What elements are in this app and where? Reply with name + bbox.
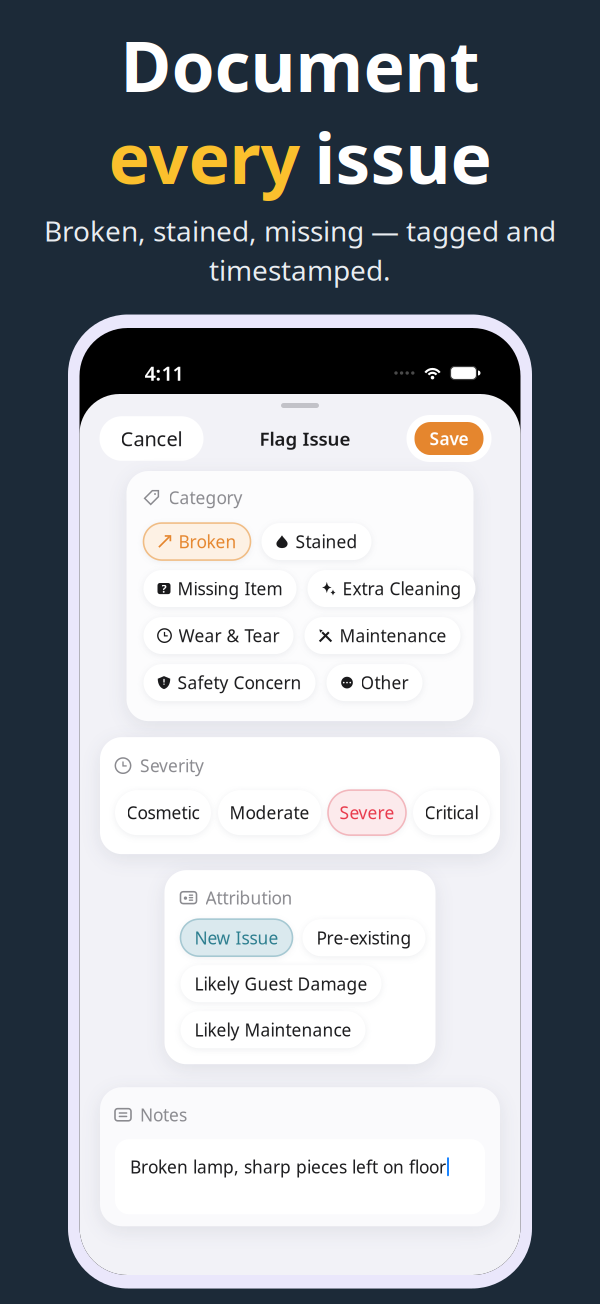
staticText: timestamped. <box>209 251 391 288</box>
button[interactable]: Wear & Tear <box>143 617 293 654</box>
button[interactable]: Extra Cleaning <box>307 570 475 607</box>
staticText: Broken, stained, missing — tagged and <box>44 212 556 249</box>
button[interactable]: Other <box>326 664 422 701</box>
staticText: every <box>108 111 300 203</box>
staticText: Cancel <box>120 425 182 452</box>
staticText: Pre-existing <box>316 926 411 949</box>
staticText: Critical <box>424 801 478 824</box>
button[interactable]: New Issue <box>180 919 292 956</box>
button[interactable]: Likely Guest Damage <box>180 965 381 1002</box>
staticText: ? <box>161 581 166 596</box>
button[interactable]: Pre-existing <box>302 919 425 956</box>
staticText: Severe <box>339 801 394 824</box>
staticText: Stained <box>295 530 357 553</box>
staticText: Document <box>120 19 479 111</box>
staticText: Broken <box>178 530 236 553</box>
staticText: Severity <box>140 754 204 777</box>
staticText: Attribution <box>205 886 292 909</box>
button[interactable]: Likely Maintenance <box>180 1011 365 1048</box>
staticText: issue <box>314 111 491 203</box>
staticText: Other <box>360 671 408 694</box>
staticText: Likely Guest Damage <box>194 972 367 995</box>
staticText: New Issue <box>194 926 278 949</box>
staticText: 4:11 <box>144 360 183 386</box>
button[interactable]: ? <box>143 570 296 607</box>
button[interactable]: Cancel <box>99 416 203 461</box>
staticText: Flag Issue <box>259 426 350 451</box>
button[interactable]: Safety Concern <box>143 664 315 701</box>
staticText: Cosmetic <box>126 801 199 824</box>
staticText: Broken lamp, sharp pieces left on floor <box>130 1155 446 1178</box>
staticText: Safety Concern <box>177 671 301 694</box>
staticText: Moderate <box>229 801 309 824</box>
staticText: Category <box>168 486 242 509</box>
button[interactable]: Stained <box>261 523 371 560</box>
button[interactable]: Severe <box>328 790 406 835</box>
staticText: Extra Cleaning <box>342 577 461 600</box>
button[interactable]: Maintenance <box>304 617 460 654</box>
staticText: Save <box>429 427 468 450</box>
staticText: Likely Maintenance <box>194 1018 351 1041</box>
button[interactable]: Save <box>406 415 491 462</box>
staticText: Missing Item <box>177 577 282 600</box>
button[interactable]: Moderate <box>218 790 321 835</box>
button[interactable]: Cosmetic <box>115 790 211 835</box>
button[interactable]: Critical <box>413 790 490 835</box>
button[interactable]: Broken <box>143 523 250 560</box>
staticText: Maintenance <box>339 624 446 647</box>
staticText: Wear & Tear <box>178 624 279 647</box>
staticText: Notes <box>140 1103 187 1126</box>
